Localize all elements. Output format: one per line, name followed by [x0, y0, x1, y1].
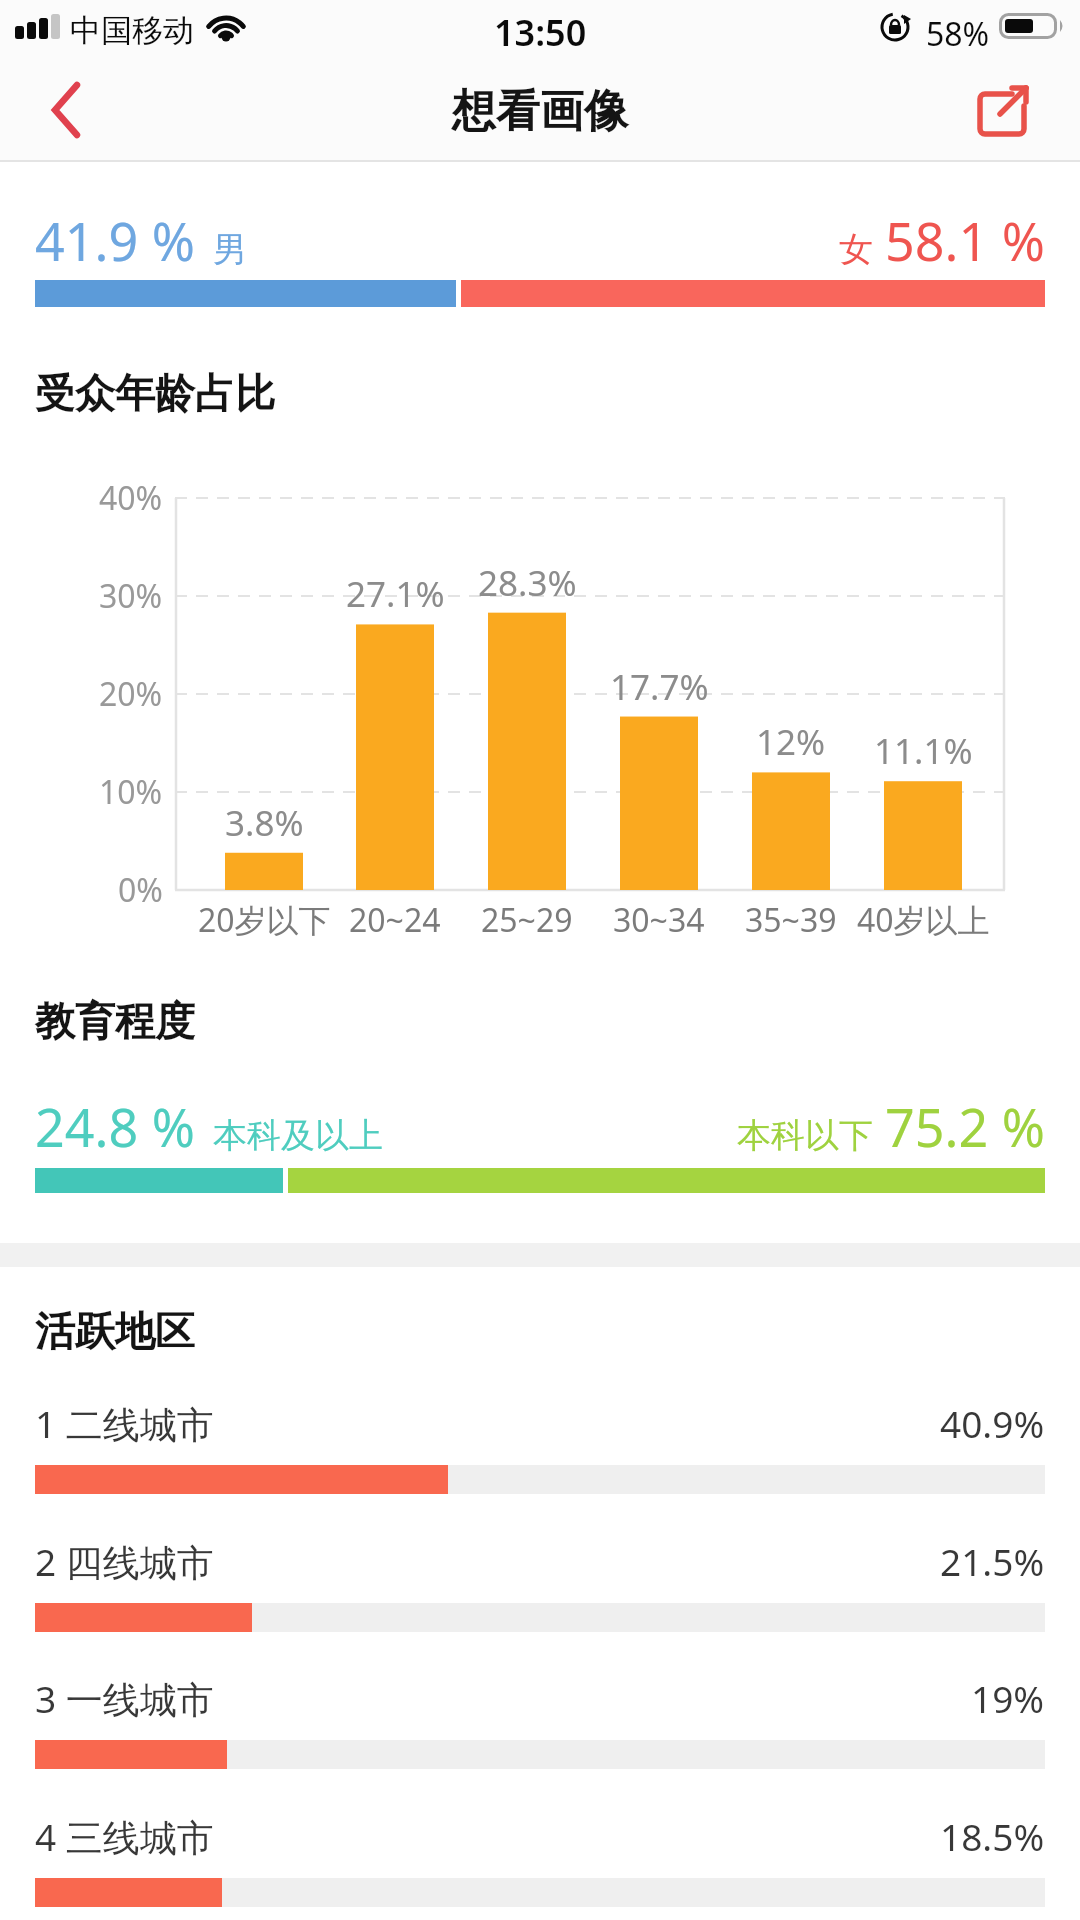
staticText: 19%: [971, 1673, 1045, 1723]
staticText: 想看画像: [452, 84, 628, 139]
staticText: 35~39: [745, 898, 837, 942]
button[interactable]: 2 四线城市: [35, 1536, 1045, 1586]
staticText: 本科以下: [737, 1114, 873, 1157]
staticText: 男: [213, 228, 247, 271]
staticText: 41.9 %: [35, 205, 195, 276]
staticText: 4 三线城市: [35, 1811, 214, 1861]
staticText: 活跃地区: [35, 1306, 195, 1356]
staticText: 3 一线城市: [35, 1673, 214, 1723]
staticText: 20%: [99, 672, 163, 716]
button[interactable]: [30, 74, 102, 146]
staticText: 18.5%: [940, 1811, 1045, 1861]
staticText: 27.1%: [346, 570, 445, 618]
staticText: 40.9%: [940, 1398, 1045, 1448]
staticText: 3.8%: [225, 799, 304, 847]
staticText: 58%: [926, 12, 990, 56]
staticText: 中国移动: [70, 11, 194, 50]
staticText: 30~34: [613, 898, 705, 942]
staticText: 21.5%: [940, 1536, 1045, 1586]
staticText: 20岁以下: [198, 898, 331, 942]
staticText: 本科及以上: [213, 1114, 383, 1157]
staticText: 1 二线城市: [35, 1398, 214, 1448]
staticText: 12%: [756, 718, 826, 766]
button[interactable]: 4 三线城市: [35, 1811, 1045, 1861]
staticText: 0%: [118, 868, 163, 912]
staticText: 40岁以上: [857, 898, 990, 942]
staticText: 58.1 %: [885, 205, 1045, 276]
staticText: 75.2 %: [885, 1091, 1045, 1162]
staticText: 28.3%: [478, 559, 577, 607]
button[interactable]: [966, 76, 1038, 148]
staticText: 40%: [99, 476, 163, 520]
staticText: 2 四线城市: [35, 1536, 214, 1586]
button[interactable]: 3 一线城市: [35, 1673, 1045, 1723]
staticText: 30%: [99, 574, 163, 618]
staticText: 10%: [99, 770, 163, 814]
staticText: 17.7%: [610, 663, 709, 711]
button[interactable]: 1 二线城市: [35, 1398, 1045, 1448]
staticText: 受众年龄占比: [35, 368, 275, 418]
staticText: 教育程度: [35, 996, 195, 1046]
staticText: 11.1%: [874, 727, 973, 775]
staticText: 24.8 %: [35, 1091, 195, 1162]
staticText: 25~29: [481, 898, 573, 942]
staticText: 女: [839, 228, 873, 271]
staticText: 13:50: [494, 8, 587, 52]
staticText: 20~24: [349, 898, 441, 942]
